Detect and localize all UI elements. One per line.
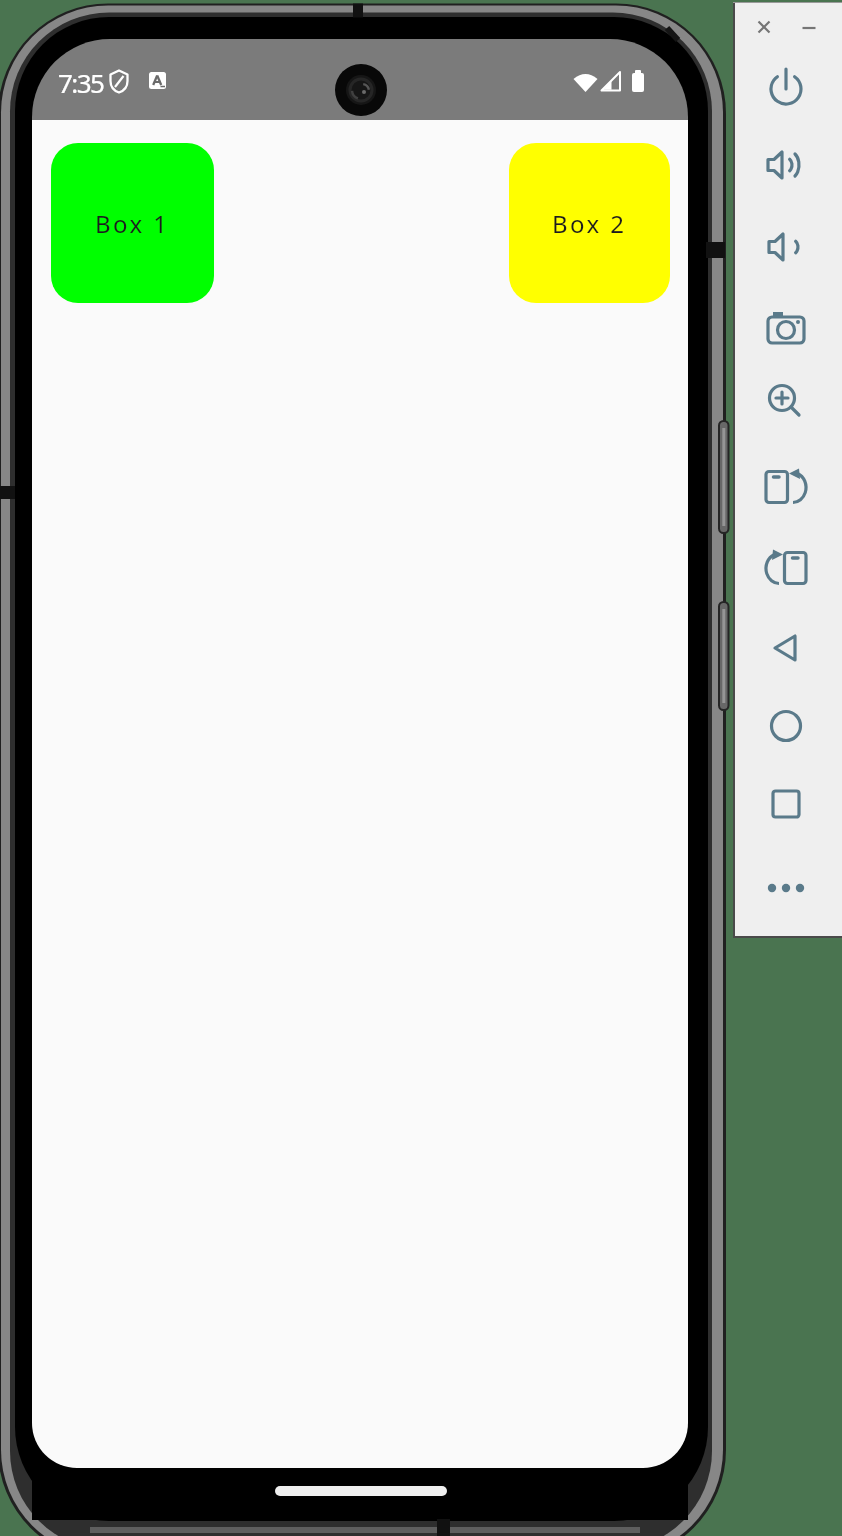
button[interactable]: Box 1 xyxy=(51,143,214,303)
button[interactable] xyxy=(764,866,808,910)
button[interactable] xyxy=(764,546,808,590)
button[interactable] xyxy=(794,12,824,42)
button[interactable] xyxy=(764,380,808,424)
button[interactable] xyxy=(764,306,808,350)
staticText: 7:35 xyxy=(58,65,104,100)
button[interactable]: Box 2 xyxy=(509,143,670,303)
button[interactable] xyxy=(764,704,808,748)
button[interactable] xyxy=(764,626,808,670)
button[interactable] xyxy=(764,465,808,509)
button[interactable] xyxy=(749,12,779,42)
button[interactable] xyxy=(764,782,808,826)
button[interactable] xyxy=(764,66,808,110)
button[interactable] xyxy=(764,225,808,269)
staticText: Box 1 xyxy=(95,207,170,240)
button[interactable] xyxy=(764,143,808,187)
staticText: Box 2 xyxy=(552,207,627,240)
